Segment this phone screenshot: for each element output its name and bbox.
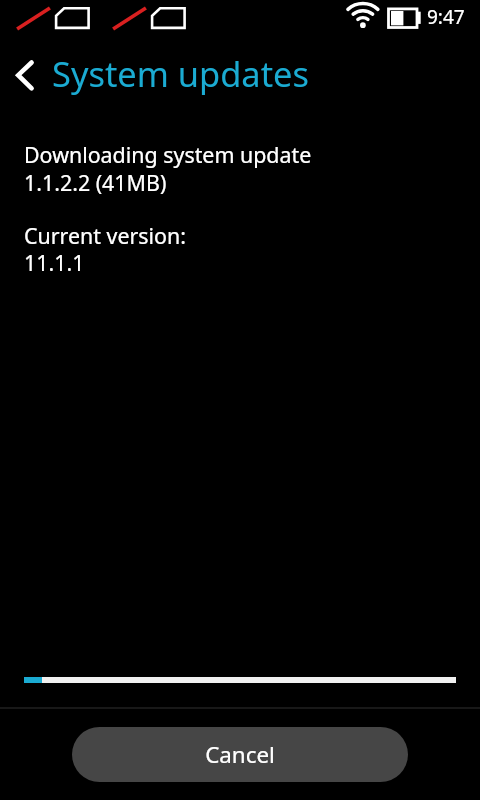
- staticText: 9:47: [427, 4, 465, 30]
- button[interactable]: Back: [6, 52, 48, 100]
- staticText: Current version:: [24, 221, 186, 250]
- button[interactable]: Cancel: [72, 727, 408, 782]
- staticText: System updates: [52, 50, 309, 97]
- staticText: Downloading system update: [24, 140, 312, 169]
- staticText: 11.1.1: [24, 248, 85, 277]
- staticText: Cancel: [205, 739, 275, 770]
- staticText: 1.1.2.2 (41MB): [24, 168, 167, 197]
